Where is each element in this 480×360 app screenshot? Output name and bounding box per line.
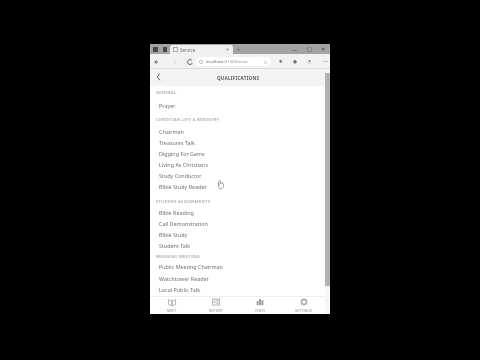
button[interactable]: Bible Study Reader [150, 181, 330, 192]
staticText: ◔ [307, 59, 312, 64]
staticText: STATS [255, 308, 266, 313]
staticText: Treasures Talk [159, 139, 195, 146]
staticText: ☆ [263, 59, 268, 65]
button[interactable]: Prayer [150, 100, 330, 111]
button[interactable]: STATS [238, 297, 282, 314]
button[interactable]: Study Conductor [150, 170, 330, 181]
staticText: + [237, 46, 241, 53]
staticText: STUDENT ASSIGNMENTS [156, 199, 211, 205]
button[interactable]: Living As Christians [150, 159, 330, 170]
staticText: □ [307, 46, 312, 52]
staticText: CHRISTIAN LIFE & MINISTRY [156, 117, 220, 123]
staticText: Prayer [159, 102, 176, 109]
staticText: Living As Christians [159, 161, 209, 168]
button[interactable]: Profile [291, 57, 299, 65]
button[interactable]: Local Public Talk [150, 284, 330, 295]
staticText: :8100/home [224, 59, 248, 65]
staticText: localhost [206, 59, 224, 65]
staticText: Study Conductor [159, 172, 202, 179]
button[interactable]: Reload [185, 57, 194, 66]
button[interactable]: Call Demonstration [150, 218, 330, 229]
button[interactable]: New tab [233, 45, 244, 54]
staticText: Call Demonstration [159, 220, 208, 227]
staticText: MEET [167, 308, 177, 313]
button[interactable]: Menu [320, 54, 330, 68]
button[interactable]: Service [170, 45, 233, 54]
staticText: REPORT [209, 308, 223, 313]
staticText: Chairman [159, 128, 184, 135]
button[interactable]: MEET [150, 297, 194, 314]
staticText: Local Public Talk [159, 286, 201, 293]
staticText: Student Talk [159, 242, 191, 249]
staticText: Digging For Gems [159, 150, 205, 157]
button[interactable]: Forward [170, 57, 179, 66]
button[interactable]: Maximize [302, 44, 316, 54]
staticText: Bible Reading [159, 209, 194, 216]
staticText: Public Meeting Chairman [159, 263, 223, 270]
staticText: ✕ [226, 47, 230, 52]
button[interactable]: Close [316, 44, 330, 54]
staticText: Bible Study Reader [159, 183, 207, 190]
staticText: ✱ [279, 59, 283, 64]
staticText: GENERAL [156, 90, 177, 96]
button[interactable]: REPORT [194, 297, 238, 314]
button[interactable]: Digging For Gems [150, 148, 330, 159]
button[interactable]: Extension [277, 57, 285, 65]
staticText: SETTINGS [295, 308, 313, 313]
staticText: Watchtower Reader [159, 275, 209, 282]
staticText: ● [293, 59, 298, 64]
button[interactable]: Bible Reading [150, 207, 330, 218]
button[interactable]: Student Talk [150, 240, 330, 251]
button[interactable]: localhost [196, 57, 271, 66]
staticText: QUALIFICATIONS [217, 75, 260, 81]
button[interactable]: Treasures Talk [150, 137, 330, 148]
staticText: ✕ [321, 46, 326, 52]
staticText: Service [180, 47, 196, 53]
button[interactable]: Extensions [305, 57, 313, 65]
staticText: — [292, 46, 298, 53]
button[interactable]: Minimize [288, 44, 302, 54]
button[interactable]: Chairman [150, 126, 330, 137]
button[interactable]: Back [152, 70, 165, 83]
staticText: Bible Study [159, 231, 188, 238]
button[interactable]: Bible Study [150, 229, 330, 240]
button[interactable]: SETTINGS [282, 297, 326, 314]
button[interactable]: Public Meeting Chairman [150, 261, 330, 272]
button[interactable]: Watchtower Reader [150, 273, 330, 284]
button[interactable]: Back [151, 57, 160, 66]
staticText: WEEKEND MEETING [156, 254, 200, 260]
